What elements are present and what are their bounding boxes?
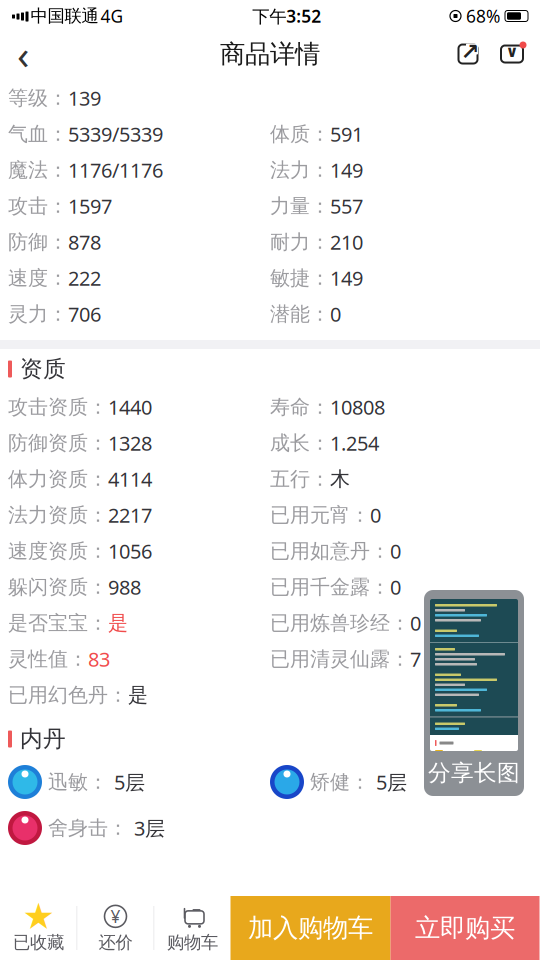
staticText: 988 bbox=[108, 574, 141, 600]
staticText: 5层 bbox=[376, 769, 407, 795]
staticText: 5层 bbox=[114, 769, 145, 795]
staticText: 攻击： bbox=[8, 194, 68, 218]
staticText: 3层 bbox=[134, 815, 165, 841]
staticText: 法力： bbox=[270, 158, 330, 182]
staticText: 立即购买 bbox=[415, 912, 515, 943]
button[interactable]: ★ bbox=[0, 896, 76, 960]
staticText: ★ bbox=[22, 896, 54, 937]
staticText: 法力资质： bbox=[8, 503, 108, 527]
staticText: 攻击资质： bbox=[8, 395, 108, 419]
staticText: 加入购物车 bbox=[248, 912, 373, 943]
staticText: 耐力： bbox=[270, 230, 330, 254]
staticText: 灵性值： bbox=[8, 647, 88, 671]
staticText: 迅敏： bbox=[48, 770, 108, 794]
staticText: 10808 bbox=[330, 394, 385, 420]
staticText: 矫健： bbox=[310, 770, 370, 794]
staticText: 是否宝宝： bbox=[8, 611, 108, 635]
staticText: 4114 bbox=[108, 466, 152, 492]
staticText: 0 bbox=[410, 610, 421, 636]
staticText: 内丹 bbox=[20, 725, 66, 753]
staticText: 已用如意丹： bbox=[270, 539, 390, 563]
staticText: 139 bbox=[68, 85, 101, 111]
staticText: 防御资质： bbox=[8, 431, 108, 455]
staticText: 1176/1176 bbox=[68, 157, 163, 183]
staticText: 五行： bbox=[270, 467, 330, 491]
staticText: 1440 bbox=[108, 394, 152, 420]
staticText: 木 bbox=[330, 467, 350, 491]
staticText: 已用幻色丹： bbox=[8, 683, 128, 707]
staticText: 0 bbox=[390, 574, 401, 600]
staticText: 资质 bbox=[20, 355, 66, 383]
staticText: 体力资质： bbox=[8, 467, 108, 491]
staticText: 防御： bbox=[8, 230, 68, 254]
staticText: 还价 bbox=[98, 932, 132, 953]
button[interactable]: 购物车 bbox=[154, 896, 230, 960]
staticText: 0 bbox=[330, 301, 341, 327]
staticText: 寿命： bbox=[270, 395, 330, 419]
staticText: 2217 bbox=[108, 502, 152, 528]
button[interactable]: 加入购物车 bbox=[230, 896, 390, 960]
staticText: 1597 bbox=[68, 193, 112, 219]
staticText: ‹ bbox=[17, 27, 29, 80]
staticText: 分享长图 bbox=[428, 759, 520, 787]
staticText: 灵力： bbox=[8, 302, 68, 326]
staticText: ∨ bbox=[505, 42, 518, 61]
staticText: 591 bbox=[330, 121, 363, 147]
staticText: ↗ bbox=[460, 39, 479, 65]
staticText: 下午3:52 bbox=[252, 4, 321, 27]
staticText: 躲闪资质： bbox=[8, 575, 108, 599]
staticText: 1.254 bbox=[330, 430, 379, 456]
staticText: 是 bbox=[128, 683, 148, 707]
button[interactable]: ¥ bbox=[77, 896, 153, 960]
staticText: 舍身击： bbox=[48, 816, 128, 840]
staticText: 速度资质： bbox=[8, 539, 108, 563]
staticText: 0 bbox=[370, 502, 381, 528]
staticText: 中国联通 bbox=[30, 5, 98, 27]
staticText: 149 bbox=[330, 157, 363, 183]
button[interactable]: 分享 bbox=[446, 32, 490, 76]
staticText: 68% bbox=[466, 4, 500, 27]
staticText: 商品详情 bbox=[220, 38, 320, 69]
staticText: 7 bbox=[410, 646, 421, 672]
staticText: ¥ bbox=[110, 905, 120, 928]
staticText: 1056 bbox=[108, 538, 152, 564]
staticText: 4G bbox=[100, 4, 123, 27]
staticText: 557 bbox=[330, 193, 363, 219]
staticText: 成长： bbox=[270, 431, 330, 455]
button[interactable]: 立即购买 bbox=[390, 896, 539, 960]
staticText: 706 bbox=[68, 301, 101, 327]
staticText: 潜能： bbox=[270, 302, 330, 326]
staticText: 83 bbox=[88, 646, 110, 672]
staticText: 已用炼兽珍经： bbox=[270, 611, 410, 635]
staticText: 力量： bbox=[270, 194, 330, 218]
staticText: 等级： bbox=[8, 86, 68, 110]
staticText: 敏捷： bbox=[270, 266, 330, 290]
staticText: 已用清灵仙露： bbox=[270, 647, 410, 671]
staticText: 气血： bbox=[8, 122, 68, 146]
staticText: 0 bbox=[390, 538, 401, 564]
staticText: 878 bbox=[68, 229, 101, 255]
staticText: 是 bbox=[108, 611, 128, 635]
staticText: 速度： bbox=[8, 266, 68, 290]
staticText: 5339/5339 bbox=[68, 121, 163, 147]
staticText: 购物车 bbox=[167, 932, 218, 953]
staticText: 210 bbox=[330, 229, 363, 255]
button[interactable]: 消息 bbox=[490, 32, 534, 76]
staticText: 已用元宵： bbox=[270, 503, 370, 527]
staticText: 149 bbox=[330, 265, 363, 291]
button[interactable]: 分享长图 bbox=[424, 590, 524, 796]
staticText: 1328 bbox=[108, 430, 152, 456]
staticText: 已收藏 bbox=[13, 932, 64, 953]
staticText: 222 bbox=[68, 265, 101, 291]
staticText: 体质： bbox=[270, 122, 330, 146]
button[interactable]: 返回 bbox=[0, 32, 46, 76]
staticText: 已用千金露： bbox=[270, 575, 390, 599]
staticText: 魔法： bbox=[8, 158, 68, 182]
